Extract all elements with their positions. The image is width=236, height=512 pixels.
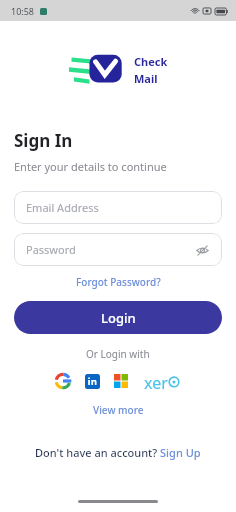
button[interactable]: View more bbox=[93, 403, 144, 417]
staticText: Password bbox=[26, 242, 194, 257]
staticText: xer bbox=[144, 372, 168, 390]
button[interactable]: Don't have an account? Sign Up bbox=[35, 441, 201, 464]
button[interactable]: Sign in with Google bbox=[54, 372, 72, 390]
button[interactable]: Sign in with Xero bbox=[141, 372, 183, 390]
staticText: Mail bbox=[134, 71, 158, 86]
staticText: Enter your details to continue bbox=[14, 159, 167, 174]
button[interactable]: Sign in with LinkedIn bbox=[83, 372, 101, 390]
button[interactable]: Password bbox=[14, 233, 222, 266]
button[interactable]: Show password bbox=[194, 242, 210, 258]
button[interactable]: Forgot Password? bbox=[14, 275, 222, 289]
staticText: Email Address bbox=[26, 200, 210, 215]
staticText: Check bbox=[134, 54, 168, 69]
staticText: Sign In bbox=[14, 129, 73, 152]
button[interactable]: Sign in with Microsoft bbox=[112, 372, 130, 390]
staticText: Or Login with bbox=[86, 347, 150, 361]
staticText: 10:58 bbox=[11, 5, 35, 17]
staticText: Don't have an account? Sign Up bbox=[35, 445, 201, 460]
staticText: View more bbox=[93, 403, 144, 417]
button[interactable]: Login bbox=[14, 301, 222, 334]
button[interactable]: Email Address bbox=[14, 191, 222, 224]
staticText: Forgot Password? bbox=[76, 275, 161, 289]
staticText: Login bbox=[101, 309, 136, 327]
